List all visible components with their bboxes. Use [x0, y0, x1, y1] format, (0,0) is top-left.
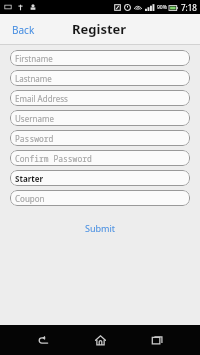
staticText: 90%: [157, 4, 167, 11]
staticText: Back: [12, 23, 35, 37]
staticText: Email Address: [15, 93, 68, 104]
button[interactable]: Firstname: [10, 50, 190, 66]
staticText: Submit: [85, 222, 116, 234]
staticText: 7:18: [181, 2, 197, 13]
button[interactable]: Username: [10, 110, 190, 126]
staticText: Register: [72, 20, 127, 38]
button[interactable]: Confirm Password: [10, 150, 190, 166]
staticText: Confirm Password: [15, 153, 92, 164]
button[interactable]: Recent apps: [143, 326, 171, 354]
button[interactable]: Password: [10, 130, 190, 146]
staticText: Coupon: [15, 193, 45, 204]
staticText: Lastname: [15, 73, 52, 84]
button[interactable]: Coupon: [10, 190, 190, 206]
staticText: Username: [15, 113, 54, 124]
button[interactable]: Back: [29, 326, 57, 354]
button[interactable]: Home: [86, 326, 114, 354]
button[interactable]: Submit: [75, 219, 126, 237]
button[interactable]: Starter: [10, 170, 190, 186]
button[interactable]: Email Address: [10, 90, 190, 106]
button[interactable]: Lastname: [10, 70, 190, 86]
staticText: Starter: [15, 173, 44, 184]
staticText: Password: [15, 133, 54, 144]
staticText: Firstname: [15, 53, 53, 64]
button[interactable]: Back: [6, 19, 41, 41]
